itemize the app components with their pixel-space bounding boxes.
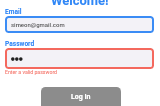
staticText: Email — [5, 8, 22, 16]
staticText: Enter a valid password — [5, 69, 58, 75]
staticText: Password — [5, 40, 35, 48]
button[interactable]: Log In — [41, 87, 121, 106]
staticText: simeon@gmail.com — [11, 21, 65, 28]
button[interactable]: simeon@gmail.com — [5, 16, 154, 33]
button[interactable] — [5, 48, 154, 69]
staticText: Log In — [71, 93, 91, 101]
staticText: Welcome! — [51, 0, 109, 8]
